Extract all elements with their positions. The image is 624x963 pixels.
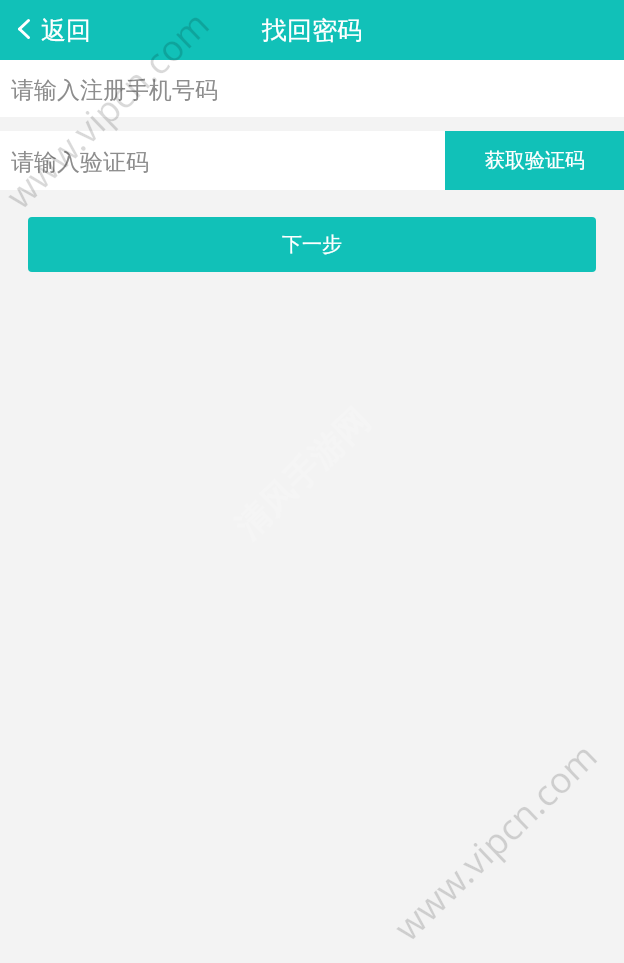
button[interactable]: 获取验证码 (445, 131, 624, 190)
staticText: 获取验证码 (485, 148, 585, 173)
button[interactable]: 请输入验证码 (0, 131, 445, 190)
staticText: 下一步 (282, 232, 342, 257)
button[interactable]: 请输入注册手机号码 (0, 60, 624, 117)
button[interactable]: 下一步 (28, 217, 596, 272)
staticText: 返回 (41, 15, 91, 46)
staticText: 请输入验证码 (11, 148, 149, 177)
staticText: 请输入注册手机号码 (11, 76, 218, 105)
staticText: 找回密码 (262, 15, 362, 46)
other: Back (18, 19, 30, 39)
button[interactable]: Back (0, 0, 107, 60)
